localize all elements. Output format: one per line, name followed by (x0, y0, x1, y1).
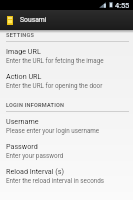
button[interactable]: Image URL (0, 45, 133, 69)
staticText: Enter the URL for fetcing the image (6, 57, 104, 64)
staticText: Enter the URL for opening the door (6, 82, 103, 89)
button[interactable]: Password (0, 140, 133, 164)
staticText: Enter your password (6, 152, 64, 159)
staticText: Password (6, 142, 38, 150)
staticText: Image URL (6, 47, 41, 55)
button[interactable]: Reload Interval (s) (0, 165, 133, 189)
staticText: SETTINGS (6, 32, 35, 39)
button[interactable]: App icon (0, 10, 133, 30)
button[interactable]: Username (0, 115, 133, 139)
staticText: Reload Interval (s) (6, 167, 64, 175)
staticText: Please enter your login username (6, 127, 100, 134)
staticText: Sousami (20, 16, 47, 24)
staticText: Username (6, 117, 39, 125)
other: App icon (7, 16, 13, 25)
staticText: Enter the reload interval in seconds (6, 177, 105, 184)
staticText: 4:55 (115, 1, 130, 10)
button[interactable]: Action URL (0, 70, 133, 94)
staticText: Action URL (6, 72, 42, 80)
staticText: LOGIN INFORMATION (6, 102, 65, 109)
